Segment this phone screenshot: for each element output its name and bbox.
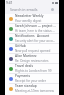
staticText: GitHub — [15, 44, 26, 48]
staticText: Meeting at 10am tomorrow — [15, 89, 54, 93]
staticText: Notifications Account — [15, 34, 50, 38]
staticText: Team standup — [15, 84, 37, 88]
button[interactable]: Travel deals — [5, 64, 59, 73]
button[interactable]: GitHub — [5, 44, 59, 53]
staticText: New pull request opened — [15, 49, 51, 53]
staticText: Alice Martinez — [15, 54, 37, 58]
button[interactable]: Account — [51, 8, 54, 11]
button[interactable]: Sarah Johnson — project update — [5, 24, 59, 33]
staticText: Hi team, here is the status report — [15, 29, 56, 33]
staticText: Receipt for your order — [15, 79, 47, 83]
button[interactable]: Notifications Account — [5, 34, 59, 43]
staticText: Flights to London from 99 — [15, 69, 52, 73]
button[interactable]: Newsletter Weekly — [5, 14, 59, 23]
staticText: Your weekly digest — [15, 19, 42, 23]
staticText: Payments — [15, 74, 31, 78]
button[interactable]: Team standup — [5, 84, 59, 93]
staticText: Search in emails — [10, 7, 38, 12]
staticText: Travel deals — [15, 64, 33, 68]
staticText: 9:41 — [6, 1, 13, 5]
staticText: Re: Design review notes — [15, 59, 49, 63]
staticText: Security alert for your account — [15, 39, 56, 43]
button[interactable]: Alice Martinez — [5, 54, 59, 63]
staticText: Newsletter Weekly — [15, 14, 44, 18]
button[interactable]: Payments — [5, 74, 59, 83]
staticText: Sarah Johnson — project update — [15, 24, 56, 28]
